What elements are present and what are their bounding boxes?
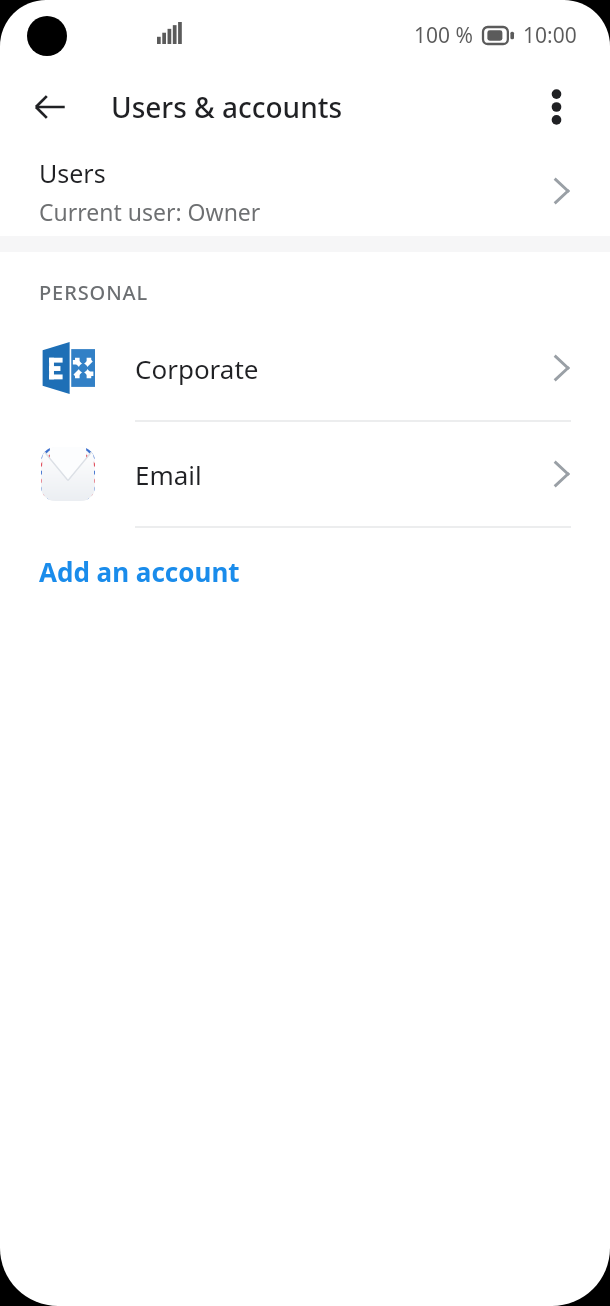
- staticText: Add an account: [39, 554, 240, 589]
- button[interactable]: Add an account: [0, 528, 610, 614]
- staticText: Email: [135, 457, 202, 492]
- staticText: Corporate: [135, 351, 259, 386]
- staticText: 10:00: [523, 21, 577, 50]
- staticText: Users: [39, 156, 106, 190]
- staticText: Current user: Owner: [39, 196, 261, 227]
- staticText: Users & accounts: [111, 88, 343, 126]
- button[interactable]: More options: [530, 81, 582, 133]
- staticText: 100 %: [414, 21, 473, 50]
- staticText: PERSONAL: [39, 279, 149, 306]
- button[interactable]: Email: [0, 422, 610, 526]
- button[interactable]: Users: [0, 146, 610, 236]
- button[interactable]: Corporate: [0, 316, 610, 420]
- button[interactable]: Back: [22, 79, 78, 135]
